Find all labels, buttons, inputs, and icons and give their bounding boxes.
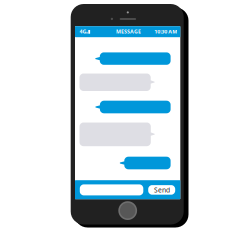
staticText: Send bbox=[154, 185, 170, 194]
button[interactable]: Home bbox=[0, 0, 250, 230]
button[interactable]: Send bbox=[0, 0, 250, 230]
staticText: 10:30 AM bbox=[154, 28, 177, 35]
staticText: 4G bbox=[79, 28, 86, 35]
staticText: MESSAGE bbox=[116, 28, 141, 35]
